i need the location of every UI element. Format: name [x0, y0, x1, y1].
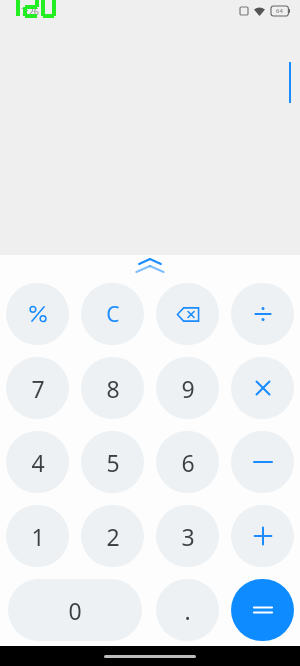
staticText: 7	[31, 373, 45, 404]
staticText: 9	[181, 373, 195, 404]
staticText: 64	[276, 7, 283, 15]
button[interactable]: Minus	[231, 431, 294, 493]
staticText: 4	[31, 447, 45, 478]
staticText: 8	[106, 373, 120, 404]
staticText: 2	[106, 521, 120, 552]
button[interactable]: Expand history	[127, 257, 173, 277]
staticText: .	[184, 595, 191, 626]
staticText: 3	[181, 521, 195, 552]
staticText: 6	[181, 447, 195, 478]
button[interactable]: 8	[81, 357, 144, 419]
staticText: C	[106, 300, 120, 329]
staticText: 17:26	[16, 5, 40, 17]
button[interactable]: Percent	[6, 283, 69, 345]
button[interactable]: 4	[6, 431, 69, 493]
button[interactable]: Backspace	[156, 283, 219, 345]
staticText: 1	[31, 521, 45, 552]
button[interactable]: 6	[156, 431, 219, 493]
staticText: 0	[68, 595, 82, 626]
button[interactable]: Decimal point	[156, 579, 219, 641]
button[interactable]: Divide	[231, 283, 294, 345]
button[interactable]: 5	[81, 431, 144, 493]
button[interactable]: Clear	[81, 283, 144, 345]
button[interactable]: 1	[6, 505, 69, 567]
button[interactable]: Plus	[231, 505, 294, 567]
button[interactable]: Equals	[231, 579, 294, 641]
button[interactable]: Multiply	[231, 357, 294, 419]
button[interactable]: 2	[81, 505, 144, 567]
staticText: 5	[106, 447, 120, 478]
button[interactable]: 3	[156, 505, 219, 567]
button[interactable]: 0	[8, 579, 142, 641]
button[interactable]: 7	[6, 357, 69, 419]
button[interactable]: 9	[156, 357, 219, 419]
